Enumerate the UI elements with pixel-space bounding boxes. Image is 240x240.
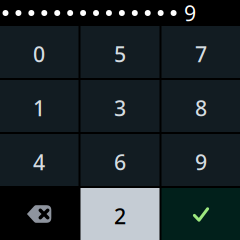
button[interactable]: Confirm: [161, 188, 240, 240]
staticText: 7: [195, 40, 207, 68]
staticText: 5: [114, 40, 126, 68]
staticText: 9: [195, 148, 207, 176]
staticText: 0: [33, 40, 45, 68]
button[interactable]: 3: [80, 80, 159, 132]
button[interactable]: 2: [80, 188, 159, 240]
staticText: 1: [33, 94, 45, 122]
button[interactable]: 8: [161, 80, 240, 132]
button[interactable]: 0: [0, 26, 78, 78]
button[interactable]: 6: [80, 134, 159, 186]
staticText: 4: [33, 148, 45, 176]
button[interactable]: 4: [0, 134, 78, 186]
button[interactable]: Delete: [0, 188, 78, 240]
staticText: 9: [184, 0, 196, 27]
button[interactable]: 9: [161, 134, 240, 186]
staticText: 6: [114, 148, 126, 176]
button[interactable]: 5: [80, 26, 159, 78]
staticText: 8: [195, 94, 207, 122]
staticText: 2: [114, 202, 126, 230]
button[interactable]: 7: [161, 26, 240, 78]
button[interactable]: 1: [0, 80, 78, 132]
staticText: 3: [114, 94, 126, 122]
